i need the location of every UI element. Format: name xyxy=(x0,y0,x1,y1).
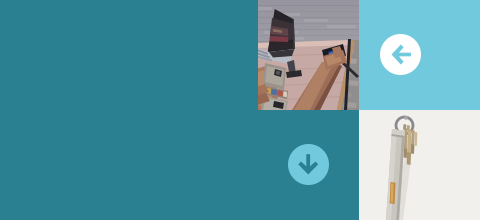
button[interactable]: Download xyxy=(288,144,329,185)
button[interactable]: Back xyxy=(380,34,421,75)
